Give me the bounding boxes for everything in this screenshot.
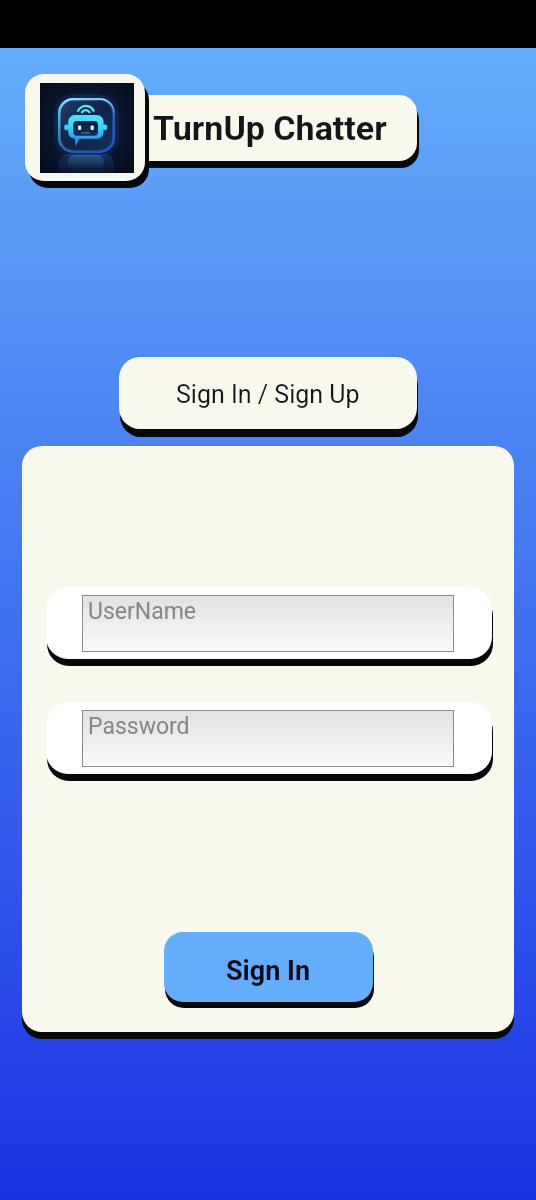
staticText: TurnUp Chatter <box>153 108 387 148</box>
button[interactable]: Password <box>46 702 492 774</box>
button[interactable]: UserName <box>46 587 492 659</box>
staticText: UserName <box>88 598 197 625</box>
button[interactable]: Sign In <box>164 932 373 1002</box>
button[interactable]: TurnUp Chatter logo <box>25 74 145 181</box>
staticText: Password <box>88 713 190 740</box>
staticText: Sign In / Sign Up <box>176 380 360 409</box>
button[interactable]: TurnUp Chatter <box>96 95 417 161</box>
button[interactable]: Sign In / Sign Up <box>119 357 417 429</box>
staticText: Sign In <box>226 955 311 987</box>
